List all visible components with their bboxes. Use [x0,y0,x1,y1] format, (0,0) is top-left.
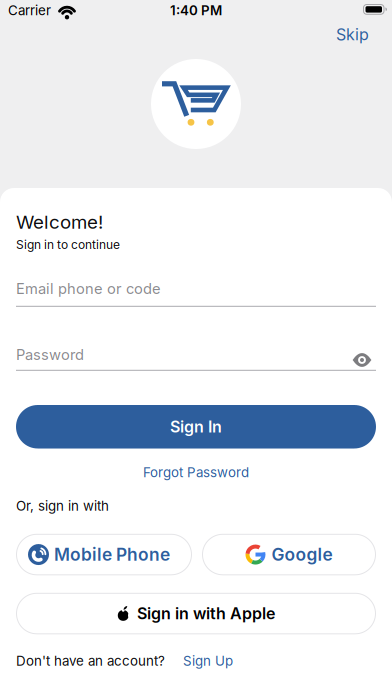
staticText: Or, sign in with [16,498,109,514]
button[interactable]: Skip [336,25,369,44]
staticText: Don't have an account? [16,653,165,669]
staticText: 1:40 PM [170,2,222,18]
staticText: Welcome! [16,211,103,233]
button[interactable]: Sign in with Apple [16,593,376,634]
button[interactable]: Sign In [16,405,376,448]
button[interactable]: Mobile Phone [16,534,192,575]
staticText: Password [16,346,84,363]
button[interactable]: Show password [349,350,375,370]
staticText: Sign Up [183,653,233,669]
button[interactable]: Sign Up [183,653,233,669]
staticText: Email phone or code [16,280,161,297]
staticText: Sign in with Apple [137,604,275,623]
staticText: Sign in to continue [16,237,120,252]
staticText: Sign In [170,417,222,436]
button[interactable]: Forgot Password [0,462,392,482]
button[interactable]: Google [202,534,376,575]
staticText: Mobile Phone [54,544,170,565]
staticText: Carrier [8,2,51,18]
staticText: Forgot Password [143,465,249,480]
staticText: Google [271,544,332,565]
staticText: Skip [336,25,369,44]
